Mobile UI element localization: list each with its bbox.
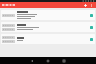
button[interactable]: Status indicator [1, 10, 95, 20]
button[interactable]: Status indicator [90, 38, 93, 41]
button[interactable]: Status indicator [90, 14, 93, 17]
button[interactable]: Back [27, 57, 37, 64]
button[interactable]: More options [89, 3, 94, 8]
button[interactable]: Home [43, 57, 53, 64]
button[interactable]: Status indicator [90, 26, 93, 29]
button[interactable]: Status indicator [1, 22, 95, 32]
button[interactable]: Add [83, 3, 88, 8]
button[interactable]: Recent apps [59, 57, 69, 64]
button[interactable]: Status indicator [1, 34, 95, 44]
